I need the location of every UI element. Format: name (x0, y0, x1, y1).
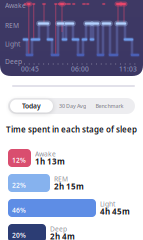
staticText: Deep (5, 57, 22, 66)
staticText: 4h 45m (100, 206, 130, 217)
staticText: 00:45 (21, 65, 39, 73)
staticText: 30 Day Avg (59, 102, 86, 110)
staticText: 20% (12, 231, 26, 240)
button[interactable]: Today (9, 98, 53, 114)
staticText: Awake (35, 150, 56, 158)
staticText: Light (5, 40, 20, 48)
staticText: 46% (12, 206, 26, 215)
staticText: Today (22, 102, 41, 110)
staticText: 22% (12, 181, 26, 190)
staticText: Awake (5, 1, 26, 10)
staticText: REM (54, 175, 68, 183)
staticText: 11:03 (119, 65, 137, 73)
staticText: 2h 15m (54, 181, 84, 192)
button[interactable]: Benchmark (88, 98, 130, 114)
staticText: Time spent in each stage of sleep (6, 124, 137, 135)
staticText: 06:00 (71, 65, 89, 73)
staticText: 2h 4m (50, 231, 75, 240)
staticText: Deep (50, 225, 67, 233)
staticText: 12% (12, 156, 26, 165)
button[interactable]: 30 Day Avg (51, 98, 93, 114)
staticText: Benchmark (95, 102, 123, 110)
staticText: Light (100, 200, 115, 208)
staticText: REM (5, 21, 19, 30)
staticText: 1h 13m (35, 156, 65, 167)
